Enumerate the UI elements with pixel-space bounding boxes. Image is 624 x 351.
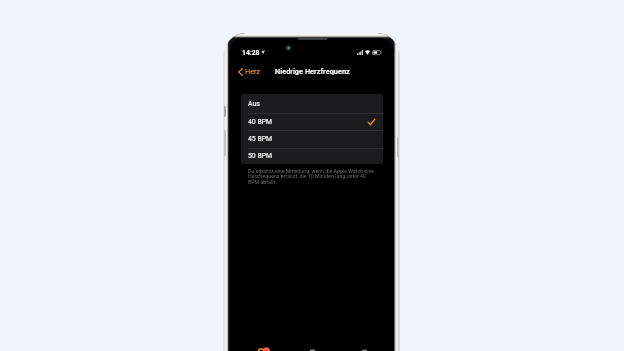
button[interactable]: Teilen bbox=[353, 336, 375, 351]
button[interactable]: Aus bbox=[241, 94, 383, 113]
button[interactable]: 45 BPM bbox=[241, 130, 383, 148]
button[interactable]: 50 BPM bbox=[241, 148, 383, 164]
button[interactable]: 40 BPM bbox=[241, 113, 383, 130]
staticText: Aus bbox=[248, 100, 260, 108]
staticText: 45 BPM bbox=[248, 135, 273, 143]
staticText: Du erhältst eine Mitteilung, wenn die Ap… bbox=[248, 168, 378, 186]
staticText: 14:28 bbox=[242, 49, 260, 57]
button[interactable]: Entdecken bbox=[301, 336, 323, 351]
button[interactable]: Übersicht bbox=[253, 336, 275, 351]
staticText: 40 BPM bbox=[248, 118, 273, 126]
button[interactable]: Herz bbox=[238, 67, 261, 76]
staticText: Niedrige Herzfrequenz bbox=[275, 67, 350, 76]
staticText: Herz bbox=[245, 67, 261, 76]
staticText: 50 BPM bbox=[248, 152, 273, 160]
